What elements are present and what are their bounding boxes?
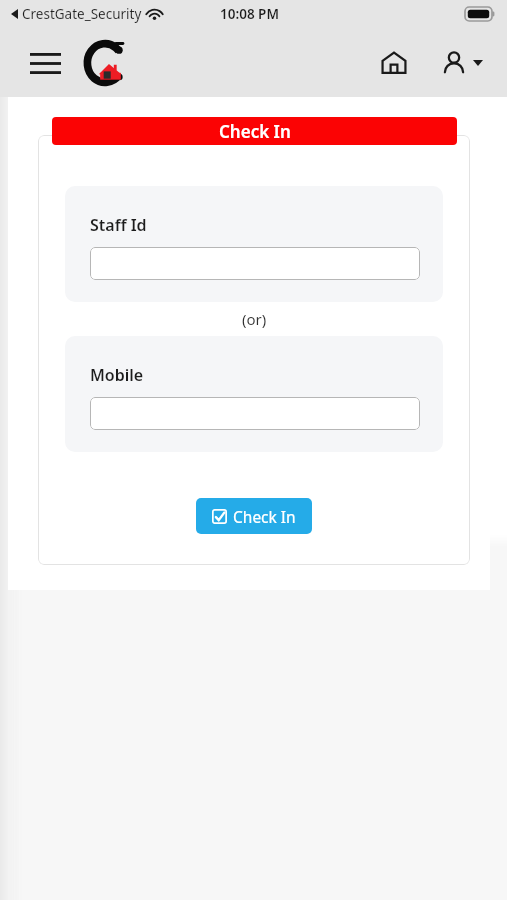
- staticText: 10:08 PM: [220, 5, 279, 23]
- staticText: (or): [242, 309, 267, 329]
- staticText: Staff Id: [90, 214, 147, 236]
- button[interactable]: Account menu: [438, 46, 487, 80]
- button[interactable]: CrestGate home: [83, 36, 127, 90]
- button[interactable]: Check In: [52, 117, 457, 145]
- button[interactable]: Menu: [26, 49, 65, 78]
- staticText: Check In: [233, 506, 296, 527]
- button[interactable]: Check In: [196, 498, 312, 534]
- staticText: Mobile: [90, 364, 144, 386]
- button[interactable]: [90, 247, 420, 280]
- button[interactable]: [90, 397, 420, 430]
- staticText: Check In: [219, 120, 291, 143]
- button[interactable]: Home: [377, 46, 411, 80]
- staticText: CrestGate_Security: [22, 5, 142, 23]
